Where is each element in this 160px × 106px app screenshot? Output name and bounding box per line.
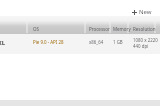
staticText: OS [33, 26, 39, 32]
staticText: Resolution [133, 26, 156, 32]
button[interactable]: Pixel 2 XL [0, 34, 160, 54]
button[interactable]: Processor [86, 16, 111, 34]
staticText: Pie 9.0 - API 28 [33, 39, 64, 45]
button[interactable]: Resolution [129, 16, 156, 34]
staticText: Processor [89, 26, 110, 32]
staticText: 440 dpi [133, 43, 149, 49]
staticText: Pixel 2 XL [0, 39, 6, 47]
staticText: 1 GB [113, 39, 123, 45]
button[interactable]: OS [28, 16, 85, 34]
button[interactable]: Sort by Name [0, 16, 27, 34]
button[interactable]: Memory [111, 16, 129, 34]
button[interactable]: New [130, 6, 154, 18]
staticText: 1080 x 2220 [133, 37, 158, 43]
staticText: Memory [113, 26, 131, 32]
staticText: New [139, 8, 152, 16]
staticText: x86_64 [89, 39, 104, 45]
